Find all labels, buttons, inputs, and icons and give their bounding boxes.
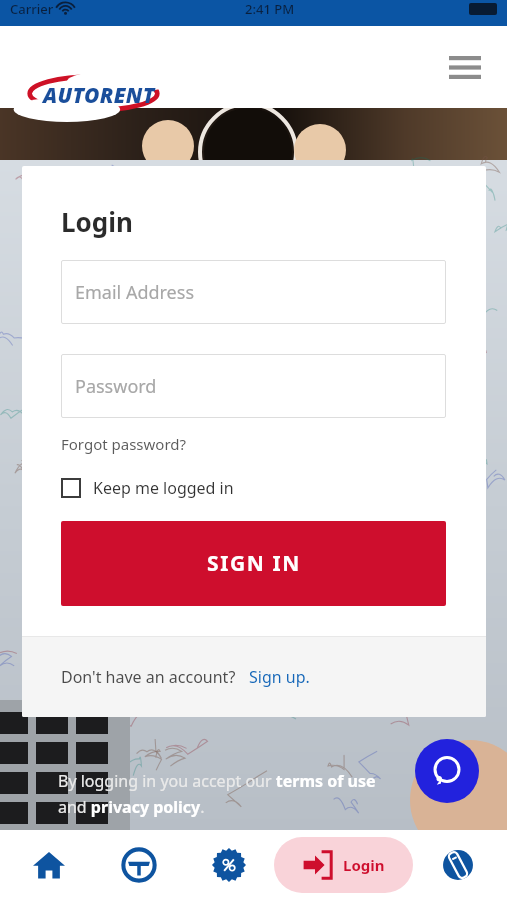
button[interactable]: SIGN IN — [61, 521, 446, 606]
staticText: Email Address — [75, 280, 195, 305]
button[interactable]: Login — [274, 837, 413, 893]
button[interactable]: Keep me logged in — [61, 477, 234, 499]
staticText: Forgot password? — [61, 434, 187, 454]
button[interactable]: Password — [61, 354, 446, 418]
button[interactable]: Home — [4, 830, 94, 900]
button[interactable]: Forgot password? — [61, 434, 187, 454]
staticText: Sign up. — [249, 666, 310, 688]
button[interactable]: Chat with us — [415, 739, 479, 803]
staticText: Password — [75, 374, 157, 399]
staticText: 2:41 PM — [245, 0, 295, 18]
staticText: By logging in you accept our terms of us… — [58, 770, 388, 818]
staticText: Keep me logged in — [93, 477, 234, 499]
button[interactable]: Menu — [443, 45, 487, 89]
button[interactable]: Cars — [94, 830, 184, 900]
staticText: Carrier — [10, 0, 54, 18]
staticText: AUTORENT — [43, 81, 155, 110]
staticText: Login — [343, 855, 385, 875]
button[interactable]: Email Address — [61, 260, 446, 324]
button[interactable]: Sign up. — [249, 666, 310, 688]
button[interactable]: Offers — [184, 830, 274, 900]
staticText: Don't have an account? — [61, 666, 236, 688]
button[interactable]: Call us — [413, 830, 503, 900]
staticText: SIGN IN — [207, 549, 301, 578]
staticText: Login — [61, 204, 133, 239]
